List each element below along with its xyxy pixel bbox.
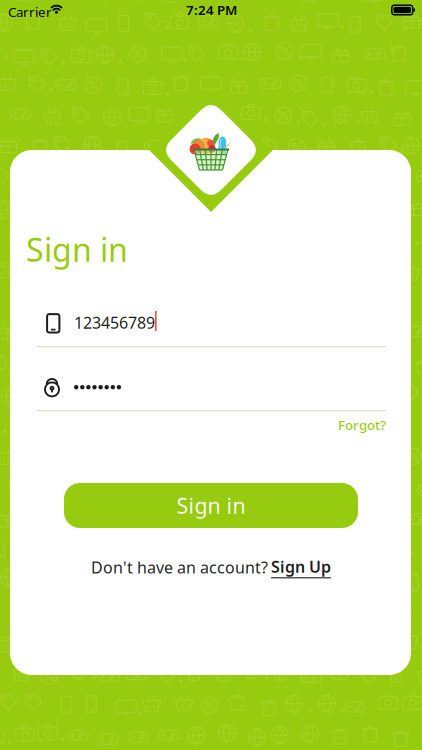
button[interactable]: Forgot? (335, 413, 389, 437)
staticText: Carrier (8, 3, 52, 21)
staticText: Sign in (26, 228, 128, 270)
staticText: 7:24 PM (186, 1, 237, 19)
staticText: Sign in (176, 491, 245, 520)
staticText: 123456789 (74, 312, 155, 333)
button[interactable]: Sign in (64, 483, 358, 528)
staticText: Don't have an account? (91, 556, 268, 578)
staticText: Forgot? (338, 416, 386, 434)
staticText: Sign Up (271, 556, 331, 577)
button[interactable]: Sign Up (271, 556, 331, 578)
